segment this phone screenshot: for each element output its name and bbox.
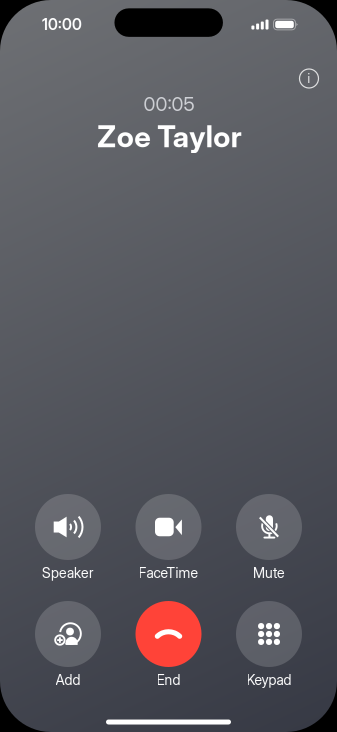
staticText: Add	[55, 671, 80, 688]
button[interactable]: Speaker	[28, 494, 108, 586]
button[interactable]: End	[128, 601, 208, 693]
staticText: End	[156, 671, 180, 688]
button[interactable]: Call details	[289, 58, 329, 98]
staticText: Zoe Taylor	[97, 119, 242, 154]
staticText: 10:00	[42, 15, 82, 34]
staticText: FaceTime	[138, 564, 198, 581]
button[interactable]: Add	[28, 601, 108, 693]
staticText: 00:05	[143, 92, 194, 116]
button[interactable]: FaceTime	[128, 494, 208, 586]
staticText: i	[307, 71, 310, 86]
staticText: Keypad	[246, 671, 291, 688]
button[interactable]: Mute	[229, 494, 309, 586]
staticText: Speaker	[42, 564, 94, 581]
button[interactable]: Keypad	[229, 601, 309, 693]
staticText: Mute	[253, 564, 285, 581]
